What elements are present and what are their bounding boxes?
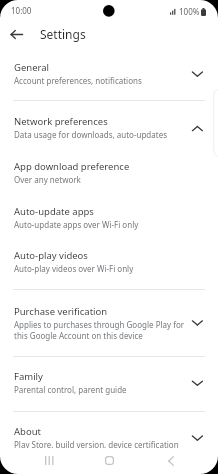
staticText: Auto-update apps over Wi-Fi only [14,219,139,230]
staticText: Data usage for downloads, auto-updates [14,129,167,140]
button[interactable]: Back [6,24,26,44]
staticText: Play Store, build version, device certif… [14,439,179,448]
staticText: Network preferences [14,115,108,128]
button[interactable]: Recent apps [39,450,59,470]
staticText: Purchase verification [14,305,108,318]
staticText: About [14,425,41,438]
button[interactable] [0,357,218,411]
staticText: Auto-play videos [14,249,88,262]
staticText: General [14,61,50,74]
staticText: Family [14,370,43,383]
button[interactable] [0,147,218,192]
button[interactable] [0,412,218,448]
staticText: Parental control, parent guide [14,384,127,395]
button[interactable] [0,290,218,356]
button[interactable]: Back [161,451,181,471]
staticText: Auto-play videos over Wi-Fi only [14,263,134,274]
staticText: 10:00 [11,5,32,16]
staticText: App download preference [14,160,130,173]
button[interactable] [0,192,218,237]
staticText: Applies to purchases through Google Play… [14,319,186,341]
button[interactable]: Home [99,450,119,470]
button[interactable] [0,55,218,100]
button[interactable] [0,101,218,147]
button[interactable] [0,237,218,289]
staticText: Account preferences, notifications [14,75,142,86]
staticText: Over any network [14,174,81,185]
staticText: Settings [40,26,86,42]
staticText: Auto-update apps [14,205,94,218]
staticText: 100% [179,6,200,17]
